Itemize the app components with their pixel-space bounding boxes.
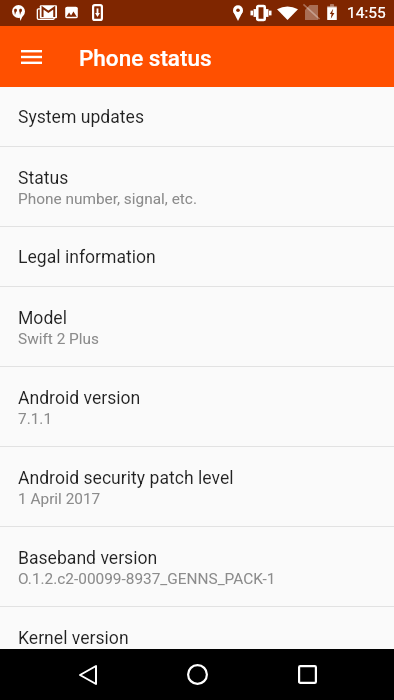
staticText: Baseband version (18, 548, 158, 569)
button[interactable]: System updates (0, 87, 394, 146)
staticText: Phone number, signal, etc. (18, 190, 197, 208)
button[interactable]: Android security patch level (0, 447, 394, 526)
button[interactable]: Legal information (0, 227, 394, 286)
staticText: Status (18, 168, 69, 189)
button[interactable]: Baseband version (0, 527, 394, 606)
staticText: Android security patch level (18, 468, 234, 489)
staticText: Swift 2 Plus (18, 330, 99, 348)
button[interactable]: Kernel version (0, 607, 394, 649)
button[interactable]: Status (0, 147, 394, 226)
staticText: Android version (18, 388, 141, 409)
button[interactable]: Open navigation drawer (0, 26, 62, 87)
staticText: 1 April 2017 (18, 490, 101, 508)
button[interactable]: Back (62, 649, 114, 700)
staticText: 7.1.1 (18, 410, 53, 428)
staticText: O.1.2.c2-00099-8937_GENNS_PACK-1 (18, 570, 276, 588)
staticText: Phone status (79, 45, 212, 71)
staticText: System updates (18, 107, 144, 128)
button[interactable]: Android version (0, 367, 394, 446)
button[interactable]: Recent apps (281, 649, 333, 700)
staticText: Model (18, 308, 67, 329)
button[interactable]: Home (171, 649, 223, 700)
button[interactable]: Model (0, 287, 394, 366)
staticText: 14:55 (347, 4, 386, 22)
staticText: Kernel version (18, 628, 129, 649)
staticText: Legal information (18, 247, 156, 268)
